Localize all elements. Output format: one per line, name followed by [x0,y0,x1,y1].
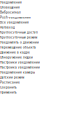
staticText: Движение в кадре [0,51,30,54]
staticText: Push-уведомления [0,16,31,19]
staticText: Вибросигнал [0,11,21,14]
staticText: Все уведомления [0,21,29,24]
staticText: Уведомления [0,1,22,4]
staticText: Применить [0,91,17,94]
staticText: Детский режим [0,76,24,79]
staticText: Круглосуточный режим [0,36,37,39]
staticText: Настройка уведомлений [0,66,40,69]
staticText: Перемещение объекта [0,46,36,49]
staticText: Уведомления камеры [0,71,35,74]
staticText: Расписание [0,81,20,84]
staticText: Уведомлять о движении [0,41,39,44]
staticText: Автовход [0,26,15,29]
staticText: Сохранить [0,86,17,89]
staticText: Настройки уведомлений [0,61,40,64]
staticText: Обнаружение людей [0,56,33,59]
staticText: Оповещения [0,6,20,9]
staticText: Круглосуточный доступ [0,31,38,34]
